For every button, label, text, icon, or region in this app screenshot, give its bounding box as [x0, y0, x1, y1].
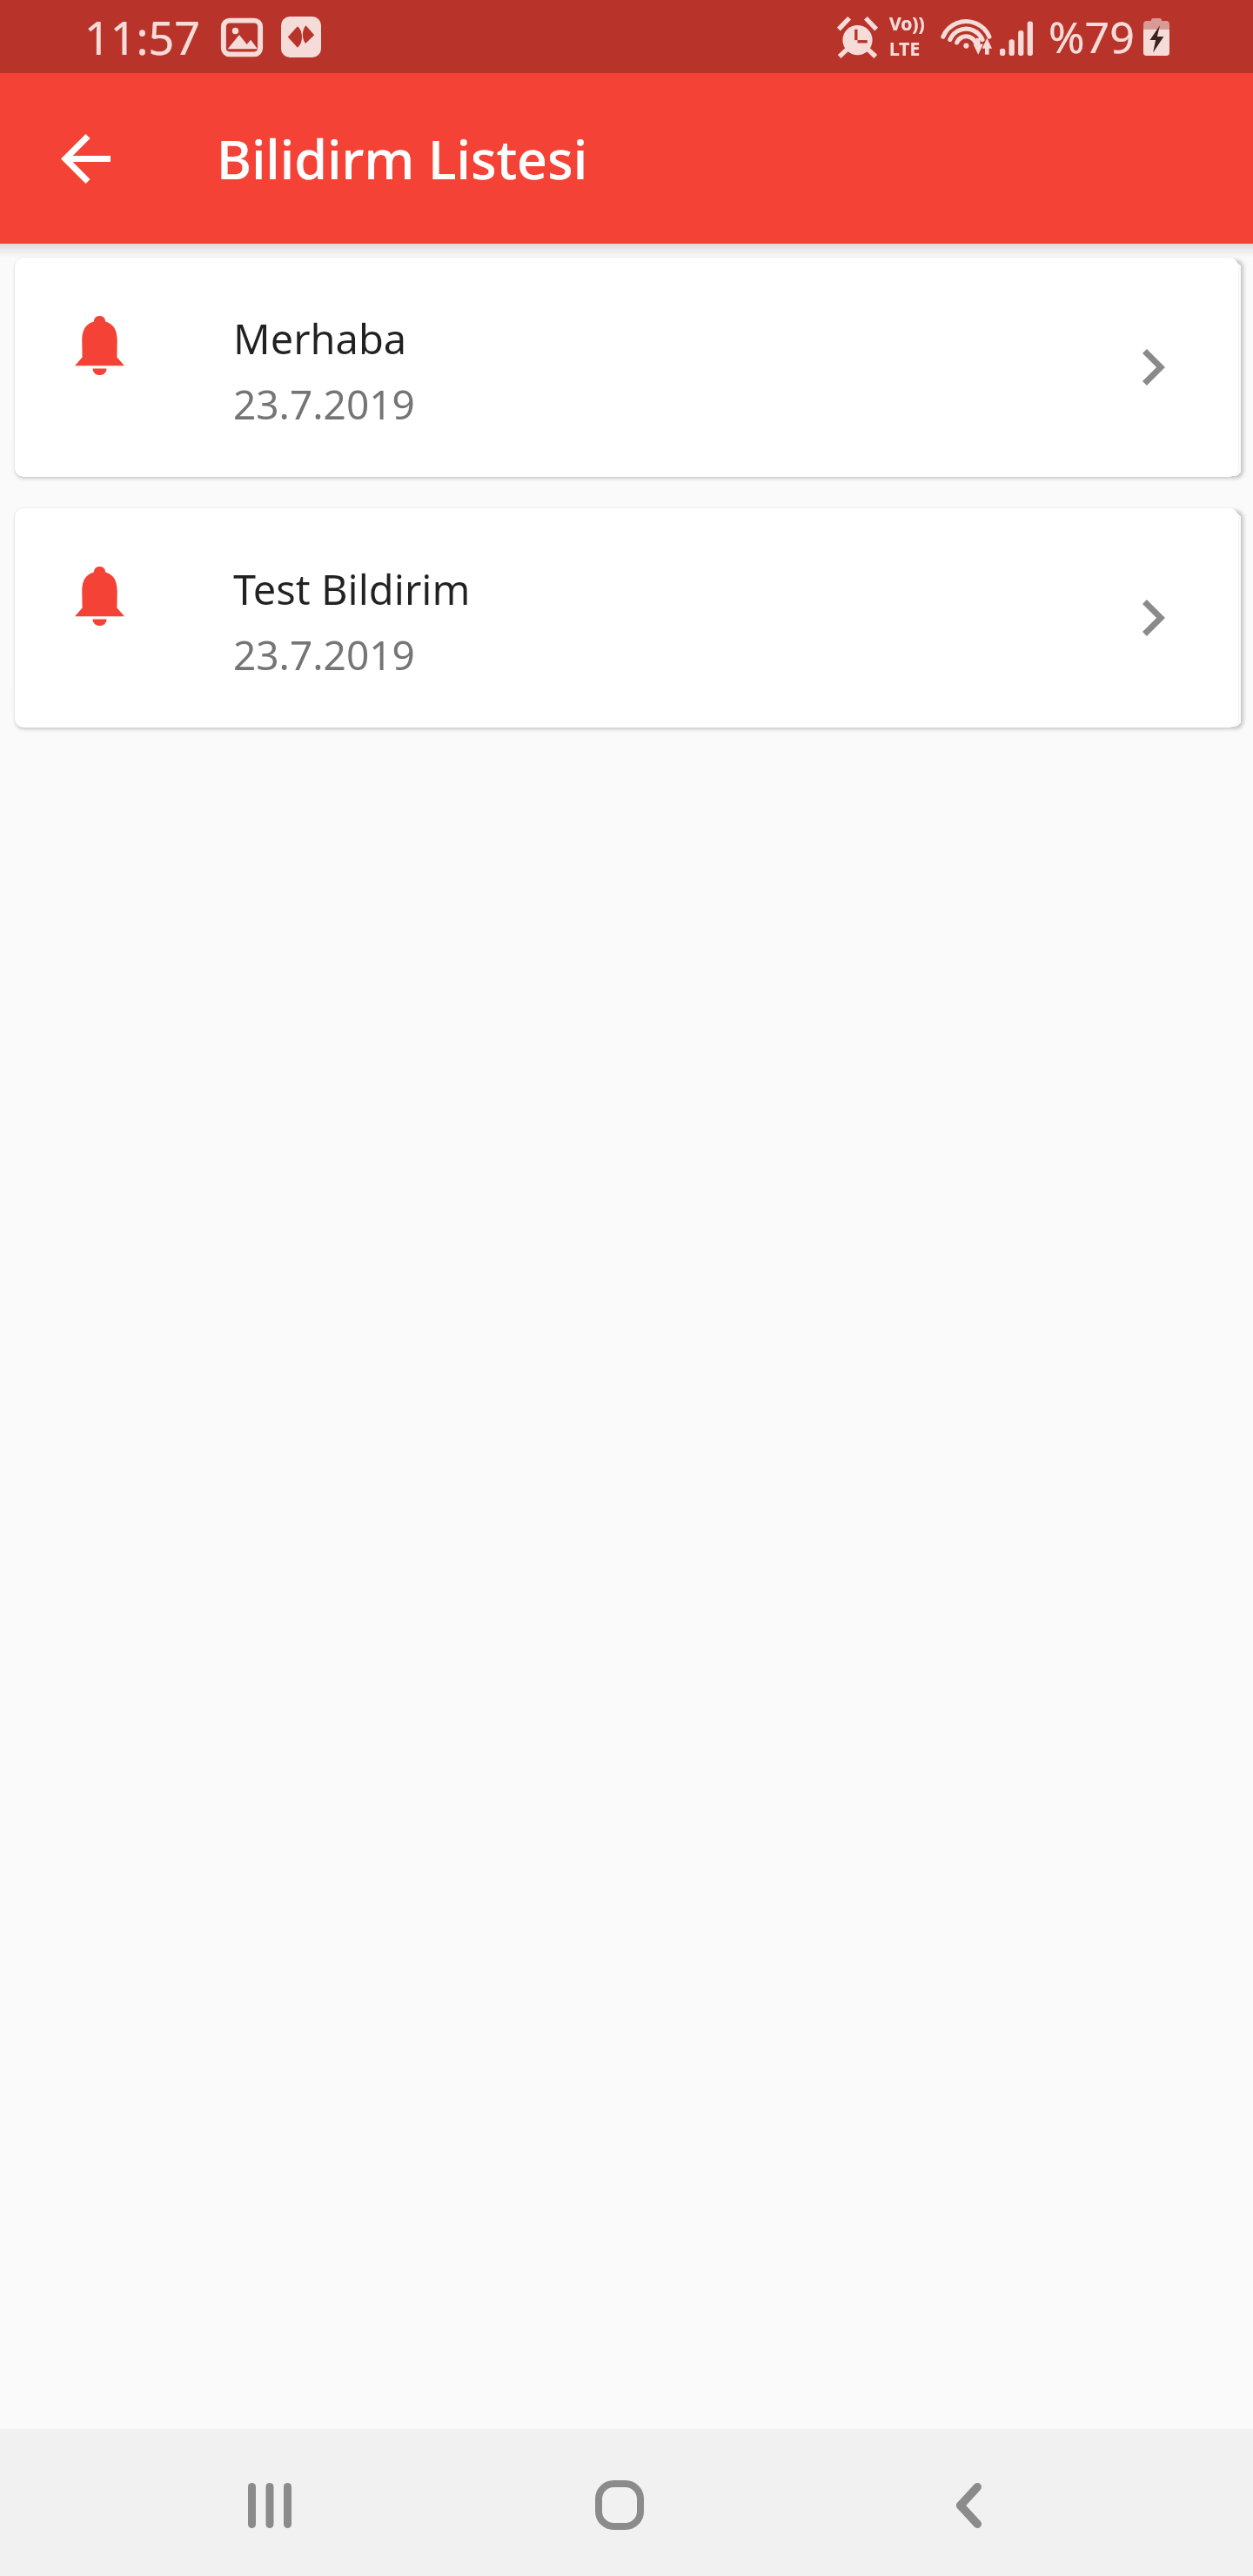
- staticText: LTE: [889, 37, 921, 62]
- staticText: 23.7.2019: [233, 377, 415, 432]
- staticText: 11:57: [84, 6, 200, 68]
- button[interactable]: Back: [874, 2429, 1062, 2576]
- staticText: Test Bildirim: [233, 561, 471, 617]
- staticText: %79: [1049, 7, 1135, 66]
- staticText: Vo)): [889, 11, 925, 37]
- button[interactable]: Home: [526, 2429, 714, 2576]
- staticText: 23.7.2019: [233, 627, 415, 682]
- button[interactable]: Recent apps: [176, 2429, 364, 2576]
- staticText: Bilidirm Listesi: [217, 123, 588, 195]
- button[interactable]: Back: [23, 96, 148, 221]
- staticText: Merhaba: [233, 311, 407, 366]
- button[interactable]: Test Bildirim: [15, 508, 1238, 728]
- button[interactable]: Merhaba: [15, 258, 1238, 477]
